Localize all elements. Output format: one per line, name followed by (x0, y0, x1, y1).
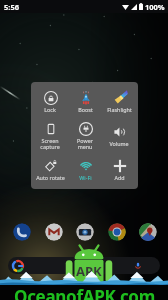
button[interactable]: Lock (33, 84, 67, 118)
staticText: Flashlight (107, 106, 132, 113)
button[interactable]: Power menu (68, 118, 102, 152)
button[interactable]: Phone (13, 223, 31, 241)
staticText: OceanofAPK.com (14, 285, 155, 300)
staticText: Add (114, 174, 125, 181)
staticText: Screen capture (40, 137, 60, 150)
button[interactable]: Boost (68, 84, 102, 118)
button[interactable]: Volume (102, 118, 136, 152)
staticText: Power menu (77, 137, 93, 150)
button[interactable]: Chrome (108, 223, 126, 241)
staticText: Boost (78, 106, 93, 113)
staticText: Auto rotate (36, 174, 65, 181)
button[interactable]: Maps (139, 223, 157, 241)
staticText: Lock (44, 106, 56, 113)
button[interactable]: Flashlight (102, 84, 136, 118)
staticText: Wi-Fi (79, 174, 92, 181)
button[interactable]: Camera (76, 223, 94, 241)
button[interactable]: Gmail (45, 223, 63, 241)
staticText: 5:56 (4, 2, 19, 12)
button[interactable]: Screen capture (33, 118, 67, 152)
button[interactable]: Auto rotate (33, 152, 67, 186)
button[interactable]: Wi-Fi (68, 152, 102, 186)
button[interactable]: Add (102, 152, 136, 186)
staticText: APK (76, 262, 102, 280)
button[interactable]: Search (8, 257, 160, 274)
staticText: 100% (145, 2, 165, 12)
staticText: Volume (109, 140, 129, 147)
